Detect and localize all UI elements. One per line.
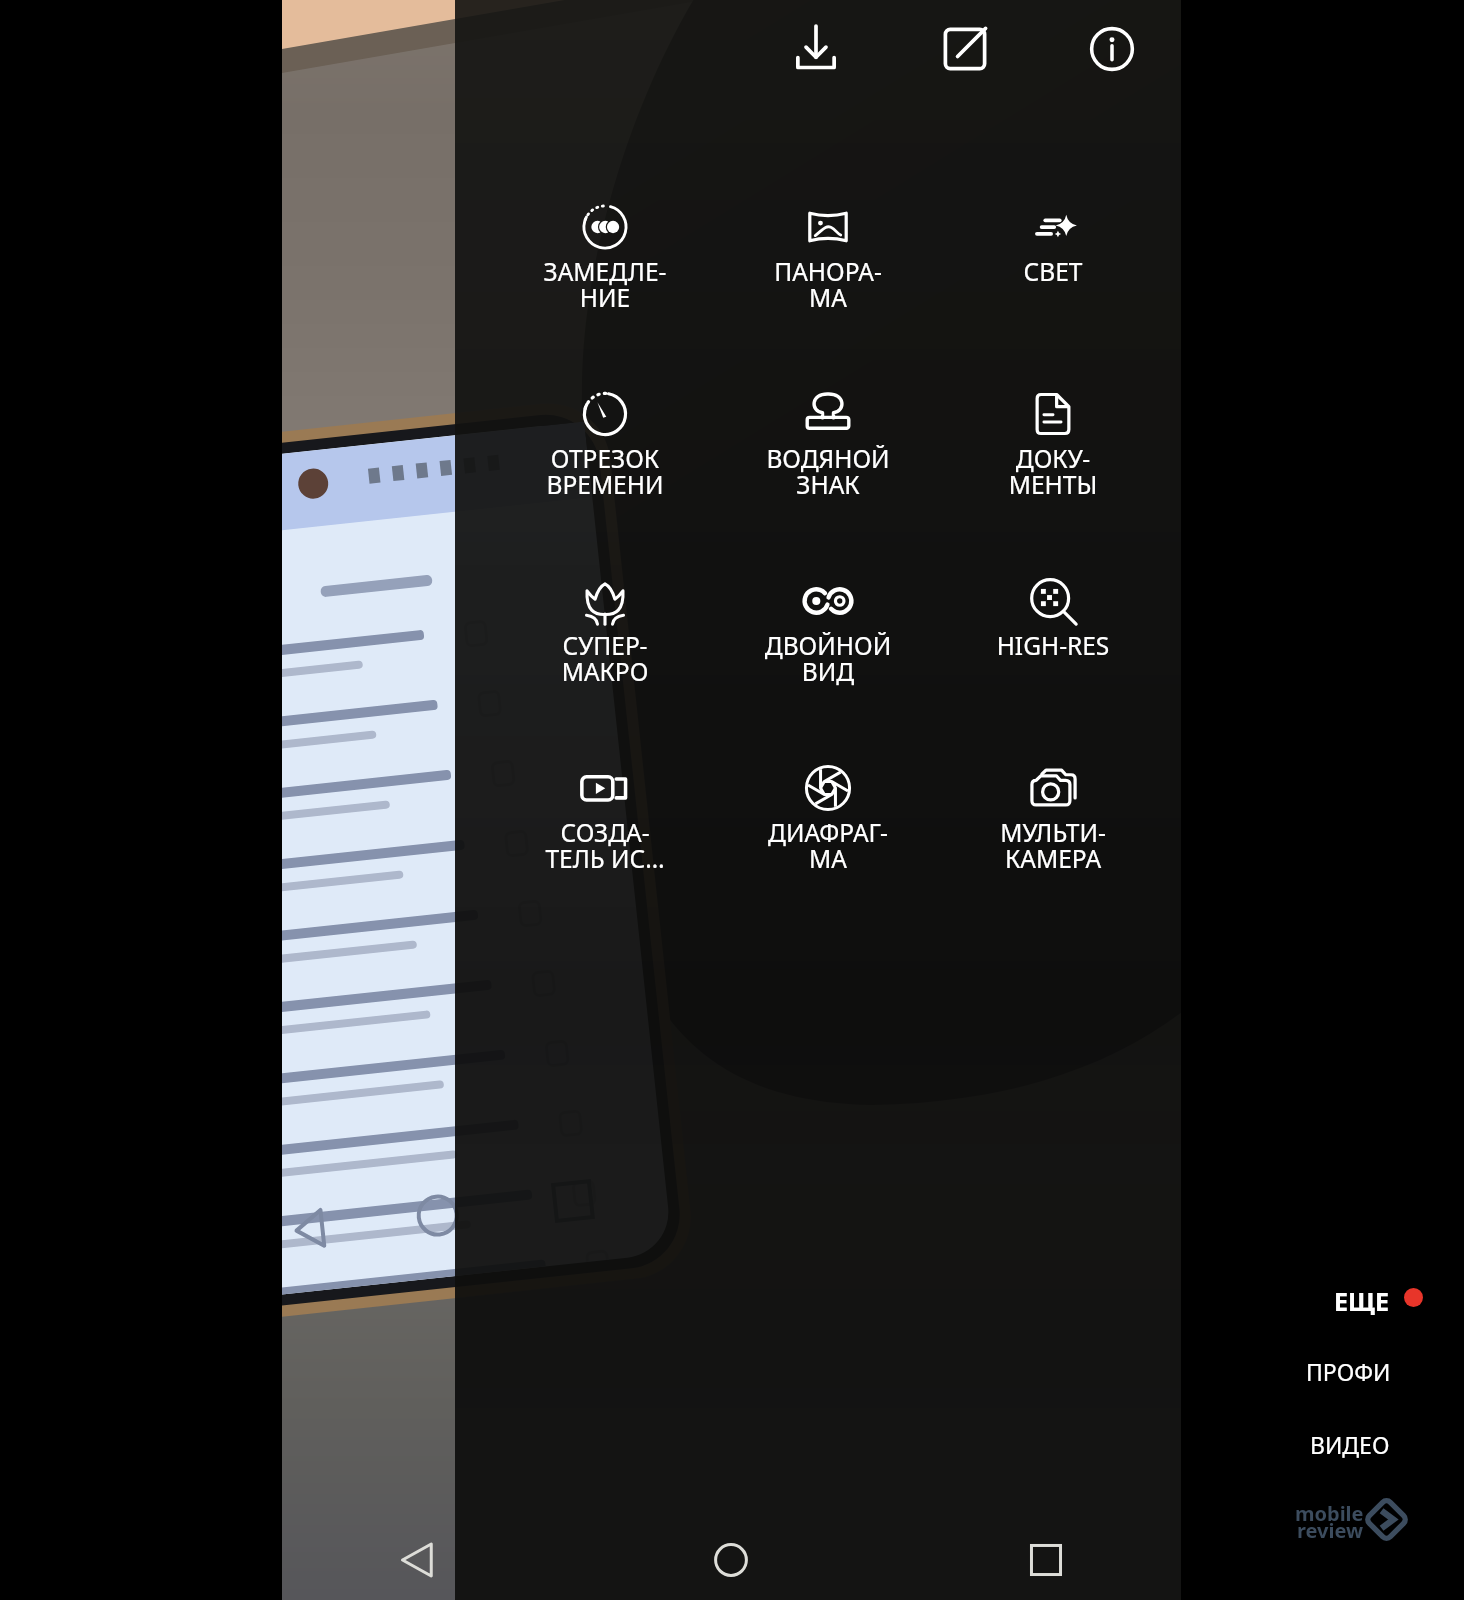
staticText: HIGH-RES: [945, 629, 1161, 662]
button[interactable]: СУПЕР- МАКРО: [497, 551, 713, 711]
staticText: ДВОЙНОЙ ВИД: [720, 629, 936, 689]
button[interactable]: ПРОФИ: [1286, 1340, 1410, 1400]
button[interactable]: Home: [687, 1516, 775, 1600]
button[interactable]: СОЗДА- ТЕЛЬ ИС…: [497, 738, 713, 898]
staticText: ПАНОРА- МА: [720, 255, 936, 315]
button[interactable]: HIGH-RES: [945, 551, 1161, 711]
button[interactable]: Info: [1075, 12, 1149, 86]
button[interactable]: СВЕТ: [945, 177, 1161, 337]
button[interactable]: Back: [373, 1516, 461, 1600]
button[interactable]: Recents: [1002, 1516, 1090, 1600]
button[interactable]: ЕЩЕ: [1334, 1284, 1423, 1318]
button[interactable]: ОТРЕЗОК ВРЕМЕНИ: [497, 364, 713, 524]
button[interactable]: МУЛЬТИ- КАМЕРА: [945, 738, 1161, 898]
button[interactable]: ДВОЙНОЙ ВИД: [720, 551, 936, 711]
button[interactable]: ДИАФРАГ- МА: [720, 738, 936, 898]
staticText: ДОКУ- МЕНТЫ: [945, 442, 1161, 502]
staticText: review: [1297, 1517, 1364, 1544]
staticText: mobile: [1295, 1500, 1364, 1527]
staticText: СУПЕР- МАКРО: [497, 629, 713, 689]
staticText: ЗАМЕДЛЕ- НИЕ: [497, 255, 713, 315]
button[interactable]: ДОКУ- МЕНТЫ: [945, 364, 1161, 524]
staticText: ДИАФРАГ- МА: [720, 816, 936, 876]
staticText: ВОДЯНОЙ ЗНАК: [720, 442, 936, 502]
staticText: ЕЩЕ: [1334, 1284, 1389, 1318]
staticText: ВИДЕО: [1310, 1429, 1390, 1460]
button[interactable]: ВОДЯНОЙ ЗНАК: [720, 364, 936, 524]
button[interactable]: Save: [779, 12, 853, 86]
staticText: ПРОФИ: [1306, 1356, 1391, 1387]
button[interactable]: ВИДЕО: [1286, 1413, 1410, 1473]
button[interactable]: ПАНОРА- МА: [720, 177, 936, 337]
staticText: СОЗДА- ТЕЛЬ ИС…: [497, 816, 713, 876]
staticText: ОТРЕЗОК ВРЕМЕНИ: [497, 442, 713, 502]
button[interactable]: Edit: [928, 12, 1002, 86]
staticText: МУЛЬТИ- КАМЕРА: [945, 816, 1161, 876]
staticText: СВЕТ: [945, 255, 1161, 288]
button[interactable]: ЗАМЕДЛЕ- НИЕ: [497, 177, 713, 337]
